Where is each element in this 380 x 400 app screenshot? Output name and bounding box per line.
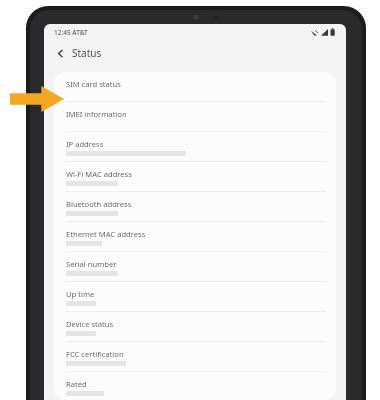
staticText: Rated bbox=[66, 379, 87, 389]
button[interactable]: Back bbox=[50, 43, 70, 63]
staticText: IP address bbox=[66, 139, 104, 149]
staticText: IMEI information bbox=[66, 109, 127, 119]
staticText: Ethernet MAC address bbox=[66, 229, 146, 239]
button[interactable]: SIM card status bbox=[54, 72, 336, 102]
button[interactable]: IMEI information bbox=[54, 102, 336, 132]
button[interactable]: IP address bbox=[54, 132, 336, 162]
other: Callout arrow pointing to IMEI informati… bbox=[10, 86, 64, 112]
button[interactable]: Device status bbox=[54, 312, 336, 342]
button[interactable]: Wi-Fi MAC address bbox=[54, 162, 336, 192]
staticText: Wi-Fi MAC address bbox=[66, 169, 132, 179]
button[interactable]: Rated bbox=[54, 372, 336, 400]
staticText: 12:45 AT&T bbox=[54, 28, 88, 37]
button[interactable]: Serial number bbox=[54, 252, 336, 282]
staticText: Device status bbox=[66, 319, 114, 329]
button[interactable]: FCC certification bbox=[54, 342, 336, 372]
staticText: Up time bbox=[66, 289, 95, 299]
button[interactable]: Bluetooth address bbox=[54, 192, 336, 222]
staticText: SIM card status bbox=[66, 79, 121, 89]
staticText: Bluetooth address bbox=[66, 199, 132, 209]
staticText: Status bbox=[72, 46, 102, 60]
button[interactable]: Ethernet MAC address bbox=[54, 222, 336, 252]
button[interactable]: Up time bbox=[54, 282, 336, 312]
staticText: Serial number bbox=[66, 259, 117, 269]
staticText: FCC certification bbox=[66, 349, 124, 359]
